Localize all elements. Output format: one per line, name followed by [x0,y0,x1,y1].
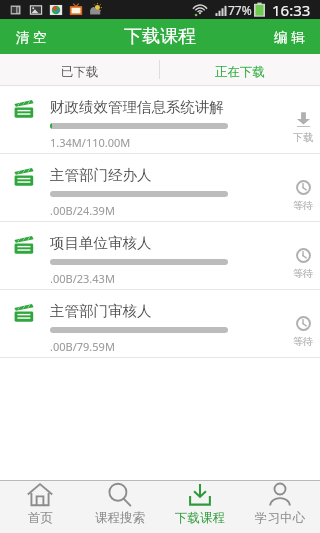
button[interactable]: 项目单位审核人 [0,222,320,290]
button[interactable]: 主管部门经办人 [0,154,320,222]
staticText: 正在下载 [215,64,265,80]
button[interactable]: 首页 [0,481,80,533]
staticText: 等待 [293,335,313,348]
button[interactable]: 主管部门审核人 [0,290,320,358]
staticText: 主管部门经办人 [50,166,152,184]
button[interactable]: Waiting [286,154,320,222]
staticText: 77% [228,2,252,18]
staticText: 课程搜索 [95,510,145,526]
staticText: 16:33 [272,0,311,19]
staticText: .00B/79.59M [50,339,115,354]
button[interactable]: Waiting [286,290,320,358]
button[interactable]: 下载课程 [160,481,240,533]
button[interactable]: 财政绩效管理信息系统讲解 [0,86,320,154]
button[interactable]: Waiting [286,222,320,290]
staticText: 首页 [28,510,53,526]
button[interactable]: 正在下载 [160,54,320,85]
staticText: 项目单位审核人 [50,234,152,252]
staticText: 下载课程 [175,510,225,526]
staticText: 下载课程 [124,25,196,48]
button[interactable]: Downloading [286,86,320,154]
staticText: 等待 [293,199,313,212]
staticText: 编 辑 [274,28,305,46]
staticText: 主管部门审核人 [50,302,152,320]
button[interactable]: 已下载 [0,54,159,85]
button[interactable]: 学习中心 [240,481,320,533]
staticText: 1.34M/110.00M [50,135,131,150]
staticText: 等待 [293,267,313,280]
button[interactable]: 课程搜索 [80,481,160,533]
staticText: 财政绩效管理信息系统讲解 [50,98,224,116]
button[interactable]: 编 辑 [264,19,320,54]
button[interactable]: 清 空 [0,19,57,54]
staticText: 学习中心 [255,510,305,526]
staticText: .00B/24.39M [50,203,115,218]
staticText: 清 空 [16,28,47,46]
staticText: 已下载 [61,64,99,80]
staticText: .00B/23.43M [50,271,115,286]
staticText: 下载 [293,131,313,144]
